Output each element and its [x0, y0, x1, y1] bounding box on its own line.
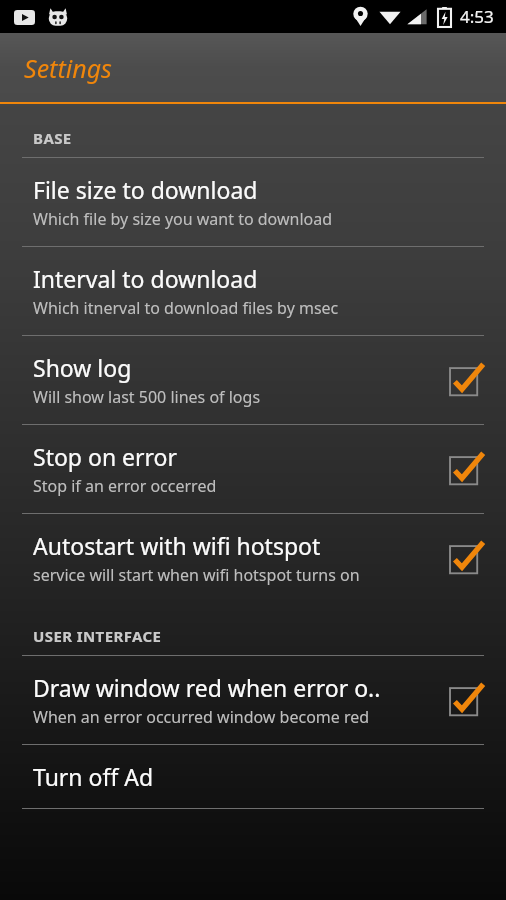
- staticText: Stop if an error occerred: [33, 475, 217, 497]
- staticText: service will start when wifi hotspot tur…: [33, 564, 360, 586]
- button[interactable]: Toggle setting: [446, 449, 486, 489]
- button[interactable]: Turn off Ad: [0, 745, 506, 808]
- staticText: Will show last 500 lines of logs: [33, 386, 261, 408]
- staticText: USER INTERFACE: [33, 626, 162, 646]
- button[interactable]: Interval to download: [0, 247, 506, 335]
- staticText: Which file by size you want to download: [33, 208, 333, 230]
- button[interactable]: Autostart with wifi hotspot: [0, 514, 506, 602]
- staticText: Settings: [24, 51, 112, 85]
- staticText: Show log: [33, 352, 132, 383]
- staticText: 4:53: [460, 5, 494, 28]
- button[interactable]: Toggle setting: [446, 680, 486, 720]
- staticText: Which itnerval to download files by msec: [33, 297, 339, 319]
- button[interactable]: Stop on error: [0, 425, 506, 513]
- button[interactable]: Toggle setting: [446, 538, 486, 578]
- button[interactable]: Show log: [0, 336, 506, 424]
- staticText: BASE: [33, 128, 72, 148]
- staticText: Autostart with wifi hotspot: [33, 530, 321, 561]
- button[interactable]: File size to download: [0, 158, 506, 246]
- button[interactable]: Toggle setting: [446, 360, 486, 400]
- staticText: Draw window red when error o..: [33, 672, 381, 703]
- staticText: When an error occurred window become red: [33, 706, 370, 728]
- staticText: File size to download: [33, 174, 258, 205]
- staticText: Interval to download: [33, 263, 258, 294]
- staticText: Turn off Ad: [33, 761, 154, 792]
- button[interactable]: Draw window red when error o..: [0, 656, 506, 744]
- staticText: Stop on error: [33, 441, 178, 472]
